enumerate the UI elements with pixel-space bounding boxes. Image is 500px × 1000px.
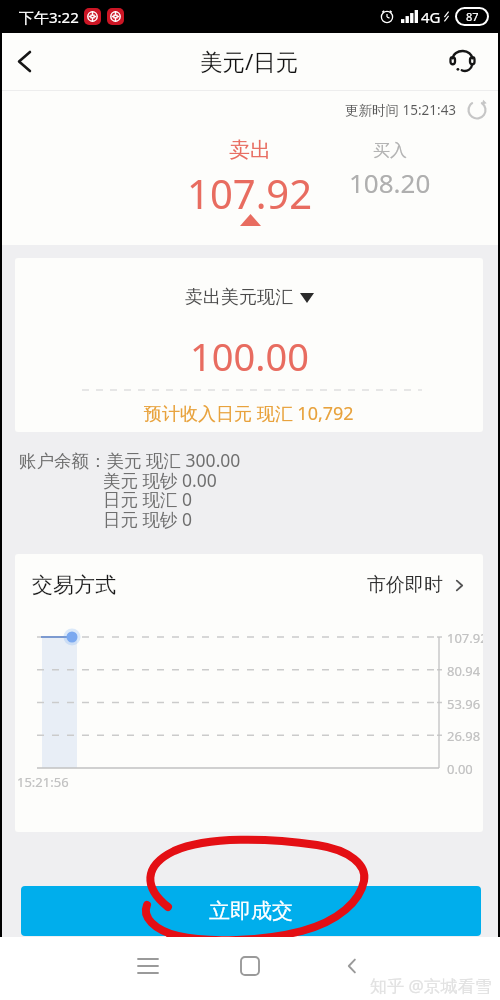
button[interactable]: 市价即时 — [367, 573, 467, 597]
staticText: 日元 现汇 0 — [103, 487, 193, 511]
staticText: 53.96 — [447, 695, 481, 713]
staticText: 107.92 — [447, 629, 483, 647]
staticText: 日元 现钞 0 — [103, 507, 193, 531]
staticText: 4G — [421, 7, 441, 27]
button[interactable]: 立即成交 — [21, 886, 481, 936]
staticText: 美元/日元 — [200, 46, 299, 77]
staticText: 买入 — [373, 140, 407, 161]
staticText: 立即成交 — [209, 898, 293, 924]
staticText: 100.00 — [190, 330, 309, 382]
button[interactable]: Back — [2, 33, 47, 90]
staticText: 卖出美元现汇 — [185, 286, 293, 309]
button[interactable]: Recent apps — [118, 946, 178, 986]
button[interactable]: Refresh — [466, 99, 488, 121]
staticText: 知乎 @京城看雪 — [370, 974, 492, 997]
staticText: 108.20 — [349, 165, 431, 200]
staticText: 26.98 — [447, 727, 481, 745]
staticText: 80.94 — [447, 662, 481, 680]
staticText: 预计收入日元 现汇 10,792 — [144, 401, 354, 426]
staticText: 15:21:56 — [17, 773, 69, 791]
staticText: 账户余额：美元 现汇 300.00 — [19, 448, 241, 472]
staticText: 美元 现钞 0.00 — [103, 468, 217, 492]
button[interactable]: Customer service — [426, 33, 498, 90]
staticText: 卖出 — [229, 137, 271, 163]
staticText: 0.00 — [447, 760, 473, 778]
button[interactable]: 卖出美元现汇 — [15, 286, 483, 309]
staticText: 交易方式 — [32, 572, 116, 598]
staticText: 87 — [466, 9, 479, 24]
staticText: 市价即时 — [367, 573, 443, 597]
button[interactable]: Home — [220, 946, 280, 986]
staticText: 下午3:22 — [19, 7, 79, 27]
staticText: 更新时间 15:21:43 — [345, 101, 457, 119]
button[interactable]: Back — [322, 946, 382, 986]
staticText: 107.92 — [187, 166, 313, 220]
